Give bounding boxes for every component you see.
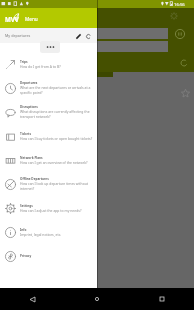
staticText: What are the next departures or arrivals… xyxy=(20,85,96,95)
staticText: How do I get from A to B? xyxy=(20,64,61,69)
button[interactable]: Network Plans xyxy=(0,148,97,172)
staticText: My departures xyxy=(5,33,31,38)
button[interactable]: Refresh xyxy=(83,31,93,41)
button[interactable]: Trips xyxy=(0,52,97,76)
button[interactable]: Tickets xyxy=(0,124,97,148)
staticText: Menu xyxy=(25,16,38,22)
staticText: How can I buy tickets or open bought tic… xyxy=(20,136,93,141)
staticText: What disruptions are currently affecting… xyxy=(20,109,96,119)
staticText: How can I look up departure times withou… xyxy=(20,181,96,191)
button[interactable]: Offline Departures xyxy=(0,172,97,196)
staticText: Offline Departures xyxy=(20,177,49,181)
staticText: How can I get an overview of the network… xyxy=(20,160,88,165)
button[interactable]: More xyxy=(40,41,60,53)
button[interactable]: Home xyxy=(64,288,129,310)
button[interactable]: Disruptions xyxy=(0,100,97,124)
button[interactable]: Back xyxy=(0,288,64,310)
staticText: Info xyxy=(20,228,27,232)
staticText: Trips xyxy=(20,60,28,64)
button[interactable]: Privacy xyxy=(0,244,97,268)
button[interactable]: Recents xyxy=(129,288,194,310)
button[interactable]: Info xyxy=(0,220,97,244)
button[interactable]: Settings xyxy=(0,196,97,220)
staticText: Disruptions xyxy=(20,105,38,109)
staticText: Departures xyxy=(20,81,38,85)
staticText: Network Plans xyxy=(20,156,43,160)
button[interactable]: Departures xyxy=(0,76,97,100)
staticText: Privacy xyxy=(20,254,32,258)
staticText: How can I adjust the app to my needs? xyxy=(20,208,82,213)
staticText: Settings xyxy=(20,204,33,208)
button[interactable]: Edit xyxy=(73,31,83,41)
staticText: MVV xyxy=(5,15,19,23)
staticText: Imprint, legal notices, etc. xyxy=(20,232,62,237)
staticText: Tickets xyxy=(20,132,31,136)
staticText: 16:56 xyxy=(174,2,185,8)
